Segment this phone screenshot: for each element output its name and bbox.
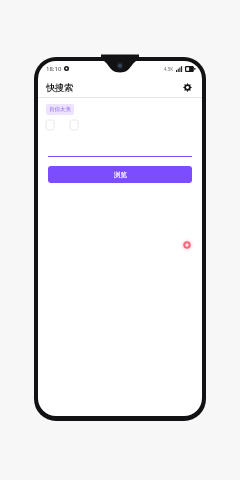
button[interactable]: Settings <box>179 79 195 95</box>
button[interactable]: 肖你太美 <box>46 104 74 115</box>
staticText: 快搜索 <box>46 82 73 93</box>
staticText: 4.5K <box>164 66 174 72</box>
staticText: 18:10 <box>46 65 62 73</box>
staticText: 浏览 <box>114 171 127 179</box>
button[interactable]: Option <box>46 120 54 130</box>
button[interactable]: Search <box>179 237 195 253</box>
staticText: 肖你太美 <box>49 106 71 113</box>
button[interactable]: Option <box>70 120 78 130</box>
button[interactable] <box>48 147 192 157</box>
button[interactable]: 浏览 <box>48 166 192 183</box>
